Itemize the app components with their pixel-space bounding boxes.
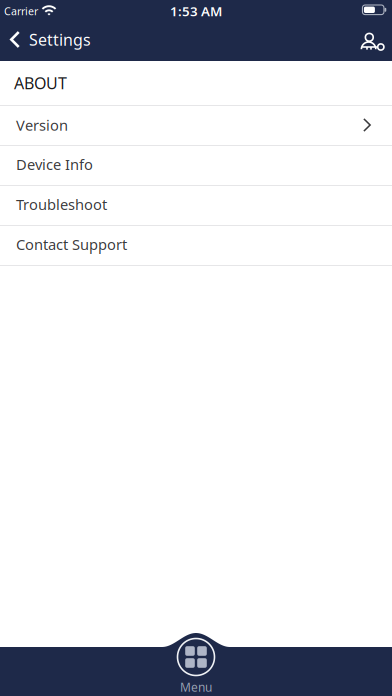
staticText: Contact Support (16, 234, 127, 254)
button[interactable]: Back (0, 18, 91, 60)
button[interactable]: Troubleshoot (0, 185, 392, 224)
staticText: Troubleshoot (16, 194, 107, 214)
button[interactable]: Contact Support (0, 225, 392, 264)
staticText: Carrier (4, 4, 38, 18)
staticText: Device Info (16, 154, 93, 174)
staticText: ABOUT (14, 72, 67, 94)
staticText: Menu (180, 679, 212, 695)
button[interactable]: Menu (156, 634, 236, 696)
button[interactable]: Version (0, 105, 392, 144)
button[interactable]: Device Info (0, 145, 392, 184)
button[interactable]: Account (350, 24, 388, 58)
staticText: 1:53 AM (170, 2, 222, 20)
staticText: Settings (29, 29, 91, 50)
staticText: Version (16, 115, 68, 135)
